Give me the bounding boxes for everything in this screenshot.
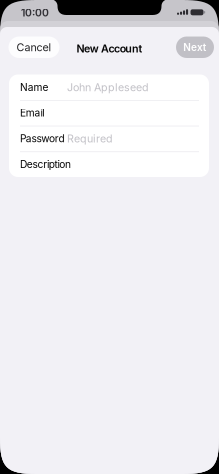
staticText: Name xyxy=(20,81,48,93)
staticText: 10:00 xyxy=(21,6,49,19)
staticText: Required xyxy=(67,132,113,145)
staticText: Password xyxy=(20,132,65,145)
button[interactable]: Email xyxy=(9,100,209,126)
staticText: Email xyxy=(20,107,44,119)
staticText: John Appleseed xyxy=(67,81,149,94)
staticText: Cancel xyxy=(16,41,51,54)
button[interactable]: Password xyxy=(9,126,209,151)
button[interactable]: Next xyxy=(176,36,214,58)
staticText: Description xyxy=(20,158,71,170)
button[interactable]: Cancel xyxy=(8,36,59,58)
button[interactable]: Name xyxy=(9,74,209,100)
button[interactable]: Description xyxy=(9,151,209,177)
staticText: New Account xyxy=(76,42,142,55)
staticText: Next xyxy=(183,41,207,53)
